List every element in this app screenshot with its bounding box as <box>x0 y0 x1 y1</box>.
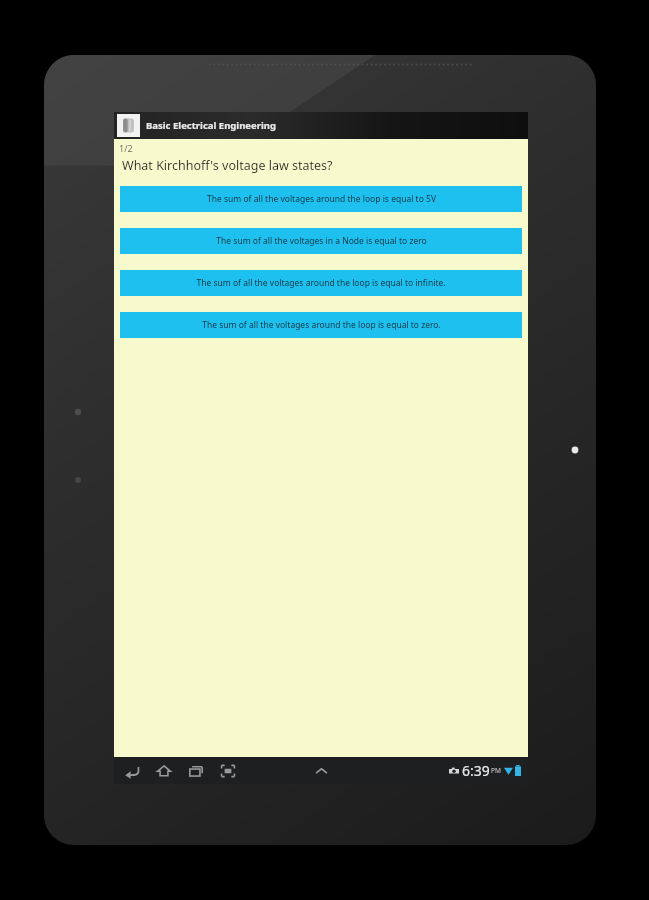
staticText: The sum of all the voltages around the l… <box>202 319 441 331</box>
button[interactable]: The sum of all the voltages around the l… <box>120 312 522 338</box>
button[interactable]: Status <box>449 761 523 780</box>
button[interactable]: Screenshot <box>216 759 240 782</box>
staticText: The sum of all the voltages around the l… <box>196 277 446 289</box>
button[interactable]: Back <box>120 759 144 782</box>
button[interactable]: The sum of all the voltages around the l… <box>120 270 522 296</box>
button[interactable]: Home <box>152 759 176 782</box>
staticText: 1/2 <box>119 142 133 154</box>
staticText: Basic Electrical Engineering <box>146 119 276 132</box>
staticText: 6:39 <box>462 761 490 780</box>
staticText: What Kirchhoff's voltage law states? <box>122 157 333 174</box>
staticText: PM <box>491 766 501 775</box>
button[interactable]: The sum of all the voltages in a Node is… <box>120 228 522 254</box>
staticText: The sum of all the voltages in a Node is… <box>216 235 427 247</box>
button[interactable]: The sum of all the voltages around the l… <box>120 186 522 212</box>
button[interactable]: Expand <box>308 760 334 782</box>
staticText: The sum of all the voltages around the l… <box>207 193 436 205</box>
button[interactable]: Recent apps <box>184 759 208 782</box>
